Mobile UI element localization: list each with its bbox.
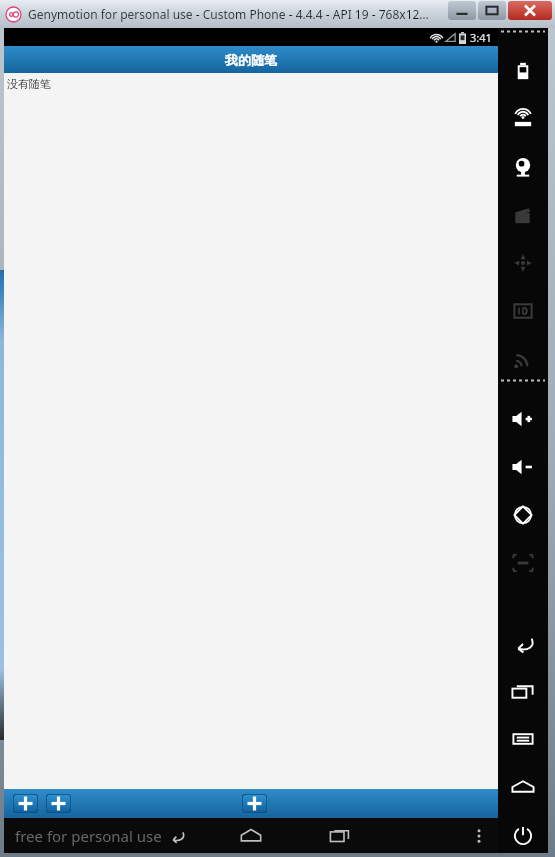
button[interactable]: Add note [13,794,38,813]
button[interactable]: Close window [508,1,552,20]
button[interactable]: Identifiers [498,294,548,328]
button[interactable]: Window button [448,1,476,20]
button[interactable]: Home [498,770,548,804]
button[interactable]: Accelerometer [498,246,548,280]
staticText: 没有随笔 [7,77,51,91]
button[interactable]: Volume up [498,402,548,436]
button[interactable]: Video capture [498,198,548,232]
staticText: 我的随笔 [225,52,277,68]
button[interactable]: Network [498,342,548,376]
button[interactable]: Volume down [498,450,548,484]
staticText: Genymotion for personal use - Custom Pho… [28,6,429,22]
button[interactable]: Scale 1:1 [498,546,548,580]
button[interactable]: More options [463,820,495,852]
button[interactable]: Rotate screen [498,498,548,532]
button[interactable]: New item [242,794,267,813]
button[interactable]: Recent apps [498,674,548,708]
button[interactable]: Menu [498,722,548,756]
button[interactable]: Battery [498,54,548,88]
button[interactable]: Recent apps [320,818,360,853]
button[interactable]: Home [231,818,271,853]
button[interactable]: Back [156,818,196,853]
button[interactable]: Power [498,818,548,852]
button[interactable]: Back [498,626,548,660]
staticText: 3:41 [470,30,492,45]
button[interactable]: Add category [46,794,71,813]
button[interactable]: GPS [498,102,548,136]
button[interactable]: Camera [498,150,548,184]
button[interactable]: Window button [478,1,506,20]
staticText: free for personal use [15,826,162,846]
button[interactable]: 我的随笔 [4,46,498,73]
